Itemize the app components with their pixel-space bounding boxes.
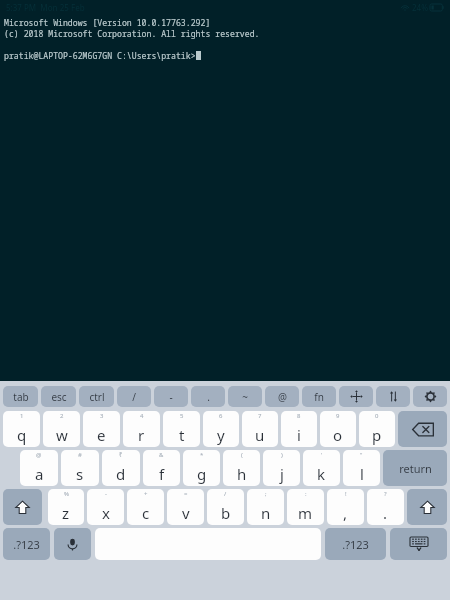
button[interactable]: .?123 <box>3 528 50 560</box>
button[interactable]: : <box>287 489 324 525</box>
staticText: a <box>35 464 44 484</box>
staticText: 4 <box>140 412 144 420</box>
button[interactable]: Move cursor <box>339 386 373 407</box>
staticText: pratik@LAPTOP-62M6G7GN C:\Users\pratik> <box>4 50 196 61</box>
staticText: % <box>64 490 69 498</box>
staticText: esc <box>51 390 67 404</box>
staticText: 3 <box>100 412 104 420</box>
staticText: ' <box>321 451 323 459</box>
staticText: = <box>184 490 188 498</box>
staticText: h <box>237 464 247 484</box>
button[interactable]: Dictate <box>54 528 91 560</box>
staticText: ! <box>345 490 347 498</box>
staticText: @ <box>278 390 287 404</box>
staticText: ~ <box>242 390 248 404</box>
staticText: return <box>399 461 432 476</box>
staticText: ( <box>241 451 243 459</box>
staticText: d <box>116 464 126 484</box>
button[interactable]: .?123 <box>325 528 386 560</box>
staticText: t <box>179 425 185 445</box>
staticText: ? <box>384 490 387 498</box>
button[interactable]: * <box>183 450 220 486</box>
button[interactable]: 7 <box>242 411 278 447</box>
button[interactable]: ' <box>303 450 340 486</box>
button[interactable]: + <box>127 489 164 525</box>
button[interactable]: " <box>343 450 380 486</box>
button[interactable]: 9 <box>320 411 356 447</box>
button[interactable]: / <box>207 489 244 525</box>
staticText: Microsoft Windows [Version 10.0.17763.29… <box>4 17 211 28</box>
staticText: ₹ <box>119 451 123 459</box>
button[interactable]: 0 <box>359 411 395 447</box>
staticText: k <box>317 464 326 484</box>
button[interactable]: 4 <box>123 411 160 447</box>
staticText: 24% <box>412 2 428 13</box>
staticText: , <box>343 503 348 523</box>
button[interactable]: 6 <box>203 411 239 447</box>
button[interactable]: ( <box>223 450 260 486</box>
button[interactable]: 5 <box>163 411 200 447</box>
button[interactable]: 3 <box>83 411 120 447</box>
button[interactable]: Arrows <box>376 386 410 407</box>
staticText: .?123 <box>342 537 369 552</box>
button[interactable]: return <box>383 450 447 486</box>
staticText: 7 <box>258 412 262 420</box>
staticText: ctrl <box>89 390 105 404</box>
staticText: j <box>280 464 284 484</box>
staticText: " <box>360 451 363 459</box>
button[interactable]: ~ <box>228 386 262 407</box>
staticText: 6 <box>219 412 223 420</box>
button[interactable]: % <box>48 489 84 525</box>
staticText: n <box>261 503 271 523</box>
staticText: v <box>182 503 190 523</box>
button[interactable]: = <box>167 489 204 525</box>
staticText: # <box>78 451 82 459</box>
button[interactable]: & <box>143 450 180 486</box>
button[interactable]: fn <box>302 386 336 407</box>
button[interactable]: ) <box>263 450 300 486</box>
button[interactable]: Shift <box>407 489 447 525</box>
button[interactable]: ctrl <box>79 386 114 407</box>
staticText: y <box>217 425 225 445</box>
staticText: fn <box>314 390 324 404</box>
staticText: i <box>297 425 301 445</box>
staticText: - <box>169 390 173 404</box>
button[interactable]: ! <box>327 489 364 525</box>
button[interactable]: - <box>87 489 124 525</box>
staticText: x <box>102 503 110 523</box>
staticText: o <box>333 425 343 445</box>
staticText: 5:37 PM Mon 25 Feb <box>6 2 85 13</box>
button[interactable]: ₹ <box>102 450 140 486</box>
button[interactable]: @ <box>265 386 299 407</box>
button[interactable]: # <box>61 450 99 486</box>
button[interactable]: Hide keyboard <box>390 528 447 560</box>
button[interactable]: 1 <box>3 411 40 447</box>
staticText: r <box>138 425 145 445</box>
button[interactable]: / <box>117 386 151 407</box>
staticText: : <box>305 490 307 498</box>
button[interactable]: - <box>154 386 188 407</box>
staticText: p <box>372 425 382 445</box>
staticText: z <box>62 503 70 523</box>
button[interactable]: 2 <box>43 411 80 447</box>
staticText: m <box>298 503 313 523</box>
button[interactable]: 8 <box>281 411 317 447</box>
staticText: f <box>159 464 165 484</box>
staticText: 5 <box>180 412 184 420</box>
button[interactable]: Settings <box>413 386 447 407</box>
staticText: - <box>105 490 107 498</box>
button[interactable]: @ <box>20 450 58 486</box>
staticText: .?123 <box>13 537 40 552</box>
staticText: q <box>17 425 27 445</box>
staticText: / <box>132 390 136 404</box>
button[interactable]: Backspace <box>398 411 447 447</box>
button[interactable]: Shift <box>3 489 42 525</box>
button[interactable]: esc <box>41 386 76 407</box>
staticText: b <box>221 503 231 523</box>
button[interactable]: . <box>191 386 225 407</box>
staticText: + <box>144 490 148 498</box>
button[interactable]: ? <box>367 489 404 525</box>
button[interactable]: ; <box>247 489 284 525</box>
button[interactable]: tab <box>3 386 38 407</box>
